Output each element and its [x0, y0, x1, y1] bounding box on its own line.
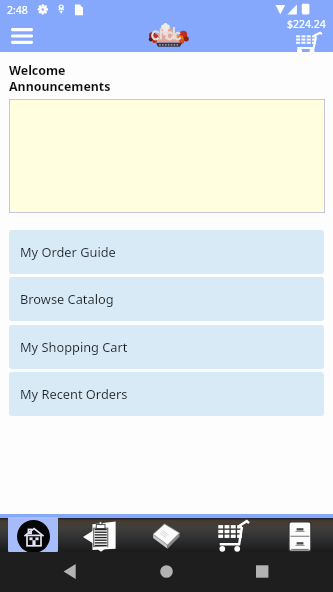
staticText: $224.24 [287, 17, 326, 31]
button[interactable]: Shopping cart total $224.24 [286, 17, 326, 53]
button[interactable]: Home [0, 517, 66, 555]
button[interactable]: My Order Guide [66, 517, 132, 555]
button[interactable]: Browse Catalog [132, 517, 199, 555]
button[interactable]: Open navigation menu [4, 25, 40, 47]
button[interactable]: My Shopping Cart [9, 325, 324, 369]
staticText: My Order Guide [20, 243, 116, 260]
staticText: My Recent Orders [20, 385, 128, 402]
button[interactable]: My Shopping Cart [199, 517, 266, 555]
staticText: My Shopping Cart [20, 338, 128, 355]
staticText: Welcome [9, 62, 66, 79]
staticText: Announcements [9, 78, 111, 95]
button[interactable]: My Recent Orders [9, 372, 324, 416]
staticText: 2:48 [7, 3, 28, 17]
button[interactable]: My Recent Orders [266, 517, 333, 555]
button[interactable]: Browse Catalog [9, 277, 324, 321]
button[interactable]: My Order Guide [9, 230, 324, 274]
staticText: Browse Catalog [20, 290, 114, 307]
